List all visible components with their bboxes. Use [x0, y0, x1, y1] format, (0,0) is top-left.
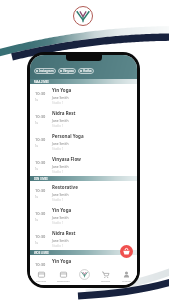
- staticText: 10:30: [35, 91, 46, 96]
- button[interactable]: Hatha: [78, 68, 94, 74]
- button[interactable]: Inkopen: [95, 267, 116, 285]
- staticText: 1u: [35, 144, 39, 148]
- staticText: 1u: [35, 218, 39, 222]
- staticText: 1u: [35, 269, 39, 273]
- staticText: 10:30: [35, 188, 46, 193]
- button[interactable]: Planning: [30, 267, 52, 285]
- staticText: Hatha: [83, 69, 92, 73]
- button[interactable]: Account: [116, 267, 137, 285]
- staticText: Restorative: [52, 184, 78, 190]
- button[interactable]: Instagram: [34, 68, 56, 74]
- staticText: 1u: [35, 195, 39, 199]
- button[interactable]: 10:30: [30, 255, 137, 278]
- staticText: Planning: [36, 279, 46, 282]
- staticText: Jane Smith: [52, 164, 69, 168]
- button[interactable]: 10:30: [30, 153, 137, 176]
- staticText: 10:30: [35, 160, 46, 165]
- button[interactable]: 10:30: [30, 107, 137, 130]
- staticText: 10:30: [35, 211, 46, 216]
- staticText: Jane Smith: [52, 95, 69, 99]
- button[interactable]: 10:30: [30, 84, 137, 107]
- staticText: Vinyasa: [63, 69, 74, 73]
- button[interactable]: Vinyasa: [58, 68, 76, 74]
- staticText: 1u: [35, 167, 39, 171]
- staticText: Studio 1: [52, 124, 64, 128]
- staticText: Studio 1: [52, 272, 64, 276]
- staticText: Studio 1: [52, 170, 64, 174]
- button[interactable]: 10:30: [30, 227, 137, 250]
- button[interactable]: 10:30: [30, 181, 137, 204]
- staticText: Yin Yoga: [52, 207, 72, 213]
- staticText: Jane Smith: [52, 192, 69, 196]
- staticText: 10:30: [35, 137, 46, 142]
- staticText: Jane Smith: [52, 141, 69, 145]
- staticText: Studio 1: [52, 147, 64, 151]
- staticText: Studio 1: [52, 198, 64, 202]
- staticText: Studio 1: [52, 101, 64, 105]
- staticText: Studio 1: [52, 221, 64, 225]
- button[interactable]: Home: [74, 267, 95, 285]
- staticText: Jane Smith: [52, 118, 69, 122]
- staticText: DIN 3 MEI: [34, 177, 48, 181]
- staticText: WOE 4 MEI: [34, 251, 49, 255]
- staticText: Yin Yoga: [52, 258, 72, 264]
- button[interactable]: 10:30: [30, 204, 137, 227]
- staticText: 10:30: [35, 114, 46, 119]
- staticText: 1u: [35, 121, 39, 125]
- staticText: Account: [122, 279, 132, 282]
- staticText: Reserveren: [57, 279, 70, 282]
- staticText: Jane Smith: [52, 215, 69, 219]
- staticText: 1u: [35, 241, 39, 245]
- staticText: Vinyasa Flow: [52, 156, 81, 162]
- staticText: Nidra Rest: [52, 110, 76, 116]
- staticText: 10:30: [35, 262, 46, 267]
- button[interactable]: Reserveren: [52, 267, 74, 285]
- staticText: Jane Smith: [52, 238, 69, 242]
- staticText: Yin Yoga: [52, 87, 72, 93]
- button[interactable]: 10:30: [30, 130, 137, 153]
- staticText: Personal Yoga: [52, 133, 84, 139]
- staticText: 1u: [35, 98, 39, 102]
- staticText: Studio 1: [52, 244, 64, 248]
- staticText: 10:30: [35, 234, 46, 239]
- button[interactable]: Shop basket: [120, 245, 133, 258]
- staticText: Inkopen: [101, 279, 111, 282]
- staticText: Nidra Rest: [52, 230, 76, 236]
- staticText: MAA 2 MEI: [34, 80, 49, 84]
- staticText: Instagram: [39, 69, 54, 73]
